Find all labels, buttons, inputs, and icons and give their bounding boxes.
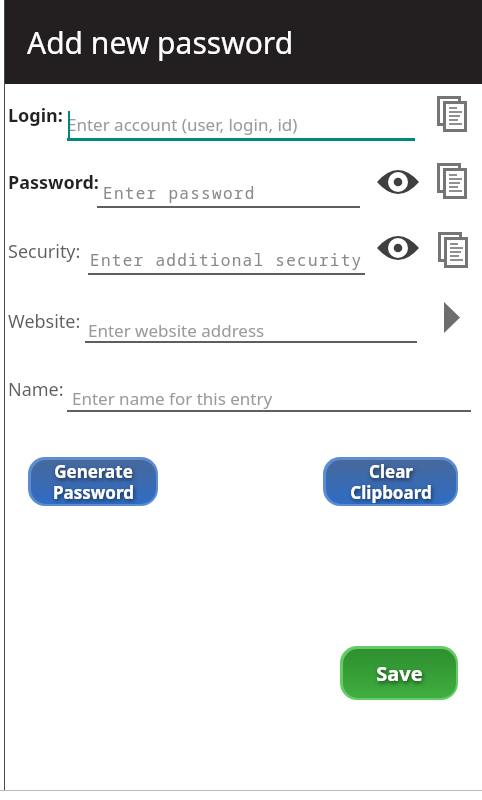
button[interactable] [88, 240, 365, 276]
button[interactable] [437, 232, 468, 269]
button[interactable] [377, 170, 419, 194]
staticText: Save [376, 660, 423, 687]
button[interactable] [377, 236, 419, 260]
button[interactable]: Save [340, 646, 458, 700]
button[interactable] [436, 96, 467, 133]
button[interactable] [97, 172, 360, 209]
staticText: Enter password [103, 182, 256, 204]
button[interactable]: Clear Clipboard [323, 457, 458, 506]
button[interactable] [67, 105, 416, 141]
staticText: Name: [8, 377, 64, 402]
button[interactable] [444, 302, 460, 333]
button[interactable] [85, 308, 417, 343]
staticText: Enter account (user, login, id) [67, 113, 298, 136]
staticText: Clear Clipboard [350, 460, 432, 504]
staticText: Website: [8, 309, 81, 334]
staticText: Enter website address [88, 319, 265, 342]
staticText: Enter name for this entry [72, 387, 273, 410]
button[interactable] [67, 376, 471, 412]
button[interactable] [436, 163, 467, 200]
staticText: Enter additional security [90, 249, 363, 271]
staticText: Security: [8, 239, 81, 264]
staticText: Login: [8, 103, 63, 128]
staticText: Add new password [27, 22, 294, 63]
button[interactable]: Generate Password [28, 457, 158, 506]
staticText: Generate Password [53, 460, 134, 504]
staticText: Password: [8, 170, 99, 195]
